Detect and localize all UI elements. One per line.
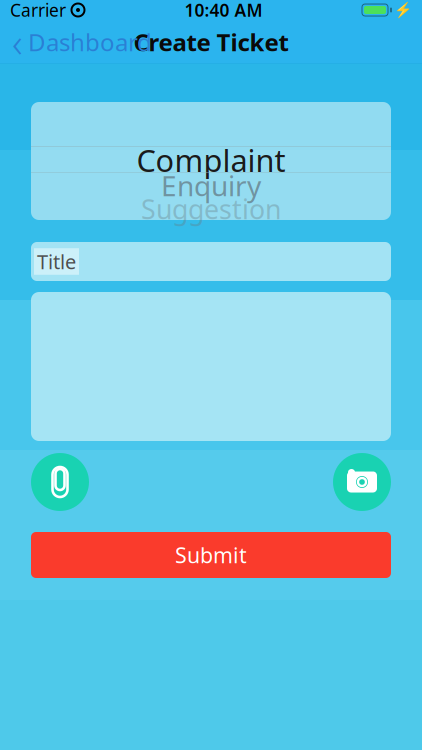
button[interactable] [31,292,391,441]
staticText: Dashboard [28,26,152,58]
staticText: Submit [175,541,247,569]
button[interactable]: ‹ [0,20,164,64]
button[interactable]: Title [31,242,391,281]
staticText: Enquiry [161,167,261,204]
staticText: Complaint [136,140,285,180]
staticText: Title [37,248,76,275]
button[interactable]: Take photo [333,453,391,511]
staticText: Suggestion [141,191,281,227]
button[interactable]: Submit [31,532,391,578]
staticText: ‹ [12,15,23,68]
button[interactable]: Attach file [31,453,89,511]
staticText: Carrier [10,0,66,21]
staticText: 10:40 AM [184,0,262,21]
staticText: ⚡ [394,2,412,18]
staticText: Create Ticket [133,26,288,58]
